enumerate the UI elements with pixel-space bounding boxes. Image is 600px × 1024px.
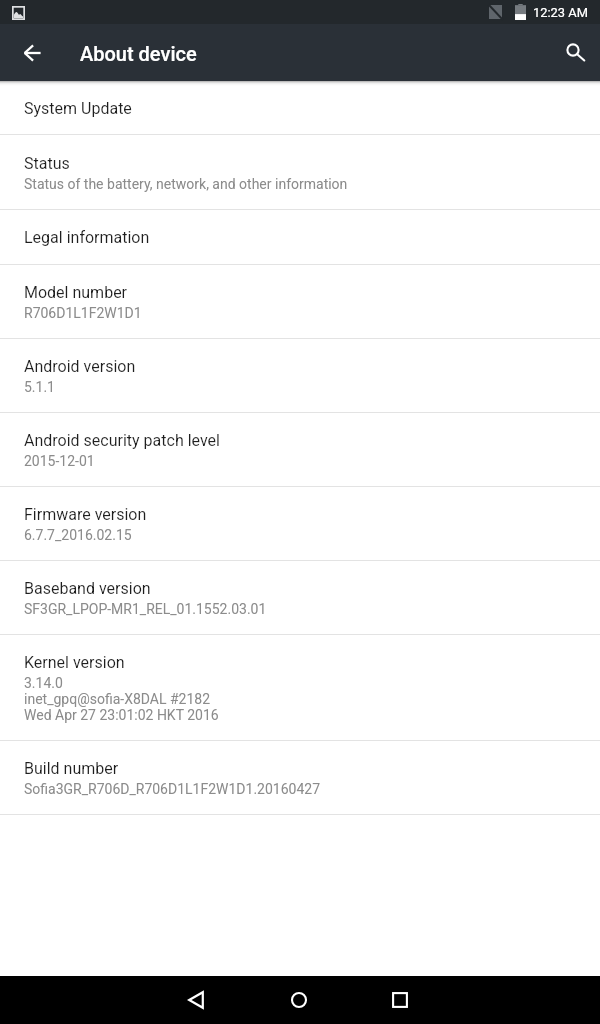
button[interactable]: Home: [275, 976, 323, 1024]
button[interactable]: Firmware version: [0, 487, 600, 561]
button[interactable]: Kernel version: [0, 635, 600, 741]
staticText: System Update: [24, 98, 132, 118]
staticText: Firmware version: [24, 504, 147, 524]
button[interactable]: Recent apps: [376, 976, 424, 1024]
button[interactable]: Build number: [0, 741, 600, 815]
staticText: R706D1L1F2W1D1: [24, 305, 142, 321]
staticText: Status: [24, 153, 70, 173]
staticText: About device: [80, 42, 197, 65]
button[interactable]: Status: [0, 135, 600, 210]
button[interactable]: Baseband version: [0, 561, 600, 635]
staticText: Kernel version: [24, 652, 125, 672]
staticText: 2015-12-01: [24, 453, 95, 469]
staticText: Sofia3GR_R706D_R706D1L1F2W1D1.20160427: [24, 781, 321, 797]
staticText: Build number: [24, 758, 119, 778]
staticText: 12:23 AM: [533, 5, 588, 20]
staticText: 5.1.1: [24, 379, 55, 395]
button[interactable]: Legal information: [0, 210, 600, 265]
button[interactable]: Back: [172, 976, 220, 1024]
button[interactable]: Android version: [0, 339, 600, 413]
staticText: Model number: [24, 282, 128, 302]
staticText: Status of the battery, network, and othe…: [24, 176, 348, 192]
staticText: Android security patch level: [24, 430, 220, 450]
button[interactable]: Search: [549, 26, 597, 74]
button[interactable]: System Update: [0, 81, 600, 135]
button[interactable]: Navigate up: [8, 29, 56, 77]
staticText: SF3GR_LPOP-MR1_REL_01.1552.03.01: [24, 601, 267, 617]
staticText: Android version: [24, 356, 136, 376]
button[interactable]: Model number: [0, 265, 600, 339]
staticText: Legal information: [24, 227, 150, 247]
staticText: Baseband version: [24, 578, 151, 598]
button[interactable]: Android security patch level: [0, 413, 600, 487]
staticText: 6.7.7_2016.02.15: [24, 527, 132, 543]
staticText: 3.14.0 inet_gpq@sofia-X8DAL #2182 Wed Ap…: [24, 675, 219, 723]
